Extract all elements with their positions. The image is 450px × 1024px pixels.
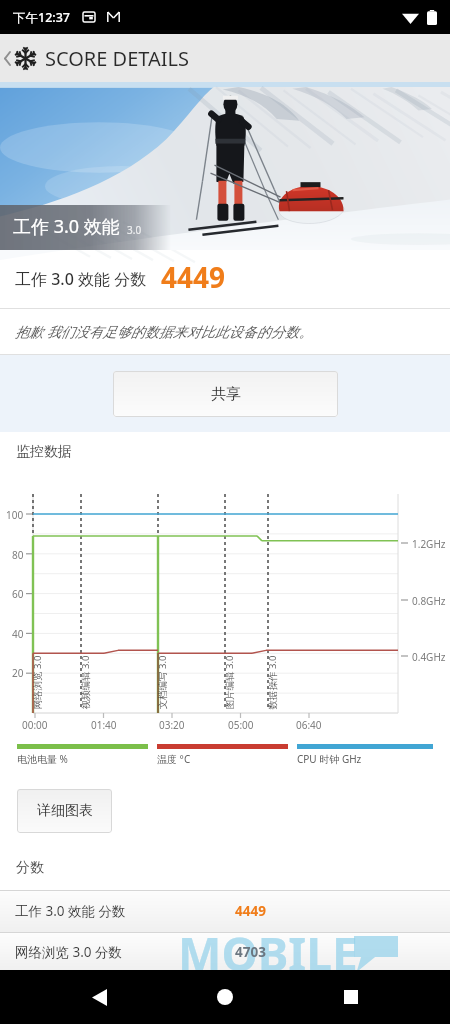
staticText: 下午12:37: [13, 9, 71, 26]
staticText: 数据操作 3.0: [265, 655, 278, 709]
staticText: 文档编写 3.0: [155, 655, 168, 709]
staticText: 网络浏览 3.0: [30, 655, 43, 709]
staticText: 20: [12, 666, 24, 680]
staticText: 温度 °C: [157, 752, 191, 766]
staticText: CPU 时钟 GHz: [297, 752, 362, 766]
staticText: 抱歉 我们没有足够的数据来对比此设备的分数。: [15, 322, 313, 341]
button[interactable]: 工作 3.0 效能 分数: [0, 890, 450, 932]
staticText: 工作 3.0 效能: [13, 214, 120, 239]
staticText: 共享: [211, 385, 241, 404]
staticText: MOBILE: [178, 922, 358, 985]
button[interactable]: 网络浏览 3.0 分数: [0, 933, 450, 970]
staticText: 03:20: [159, 718, 185, 732]
button[interactable]: Back: [72, 970, 126, 1024]
staticText: 80: [12, 548, 24, 562]
staticText: SCORE DETAILS: [45, 45, 190, 72]
staticText: 视频编辑 3.0: [78, 655, 91, 709]
staticText: 4449: [235, 902, 266, 920]
staticText: 3.0: [127, 223, 142, 237]
staticText: 电池电量 %: [17, 752, 68, 766]
button[interactable]: Back: [0, 34, 14, 82]
staticText: 05:00: [228, 718, 254, 732]
staticText: 01:40: [91, 718, 117, 732]
staticText: 60: [12, 587, 24, 601]
staticText: 100: [6, 508, 24, 522]
button[interactable]: 详细图表: [17, 789, 112, 833]
staticText: 00:00: [22, 718, 48, 732]
staticText: 1.2GHz: [412, 537, 446, 551]
staticText: 详细图表: [37, 802, 93, 820]
staticText: 4703: [235, 943, 266, 961]
staticText: 工作 3.0 效能 分数: [15, 902, 126, 920]
staticText: 06:40: [296, 718, 322, 732]
button[interactable]: 共享: [113, 371, 338, 417]
staticText: 监控数据: [16, 443, 72, 461]
staticText: 网络浏览 3.0 分数: [15, 943, 123, 961]
staticText: 工作 3.0 效能 分数: [15, 268, 147, 290]
staticText: 0.4GHz: [412, 650, 446, 664]
button[interactable]: Recent apps: [324, 970, 378, 1024]
staticText: 40: [12, 627, 24, 641]
staticText: 分数: [16, 859, 44, 877]
button[interactable]: Home: [198, 970, 252, 1024]
staticText: 0.8GHz: [412, 594, 446, 608]
staticText: 图片编辑 3.0: [222, 655, 235, 709]
staticText: 4449: [161, 258, 226, 296]
